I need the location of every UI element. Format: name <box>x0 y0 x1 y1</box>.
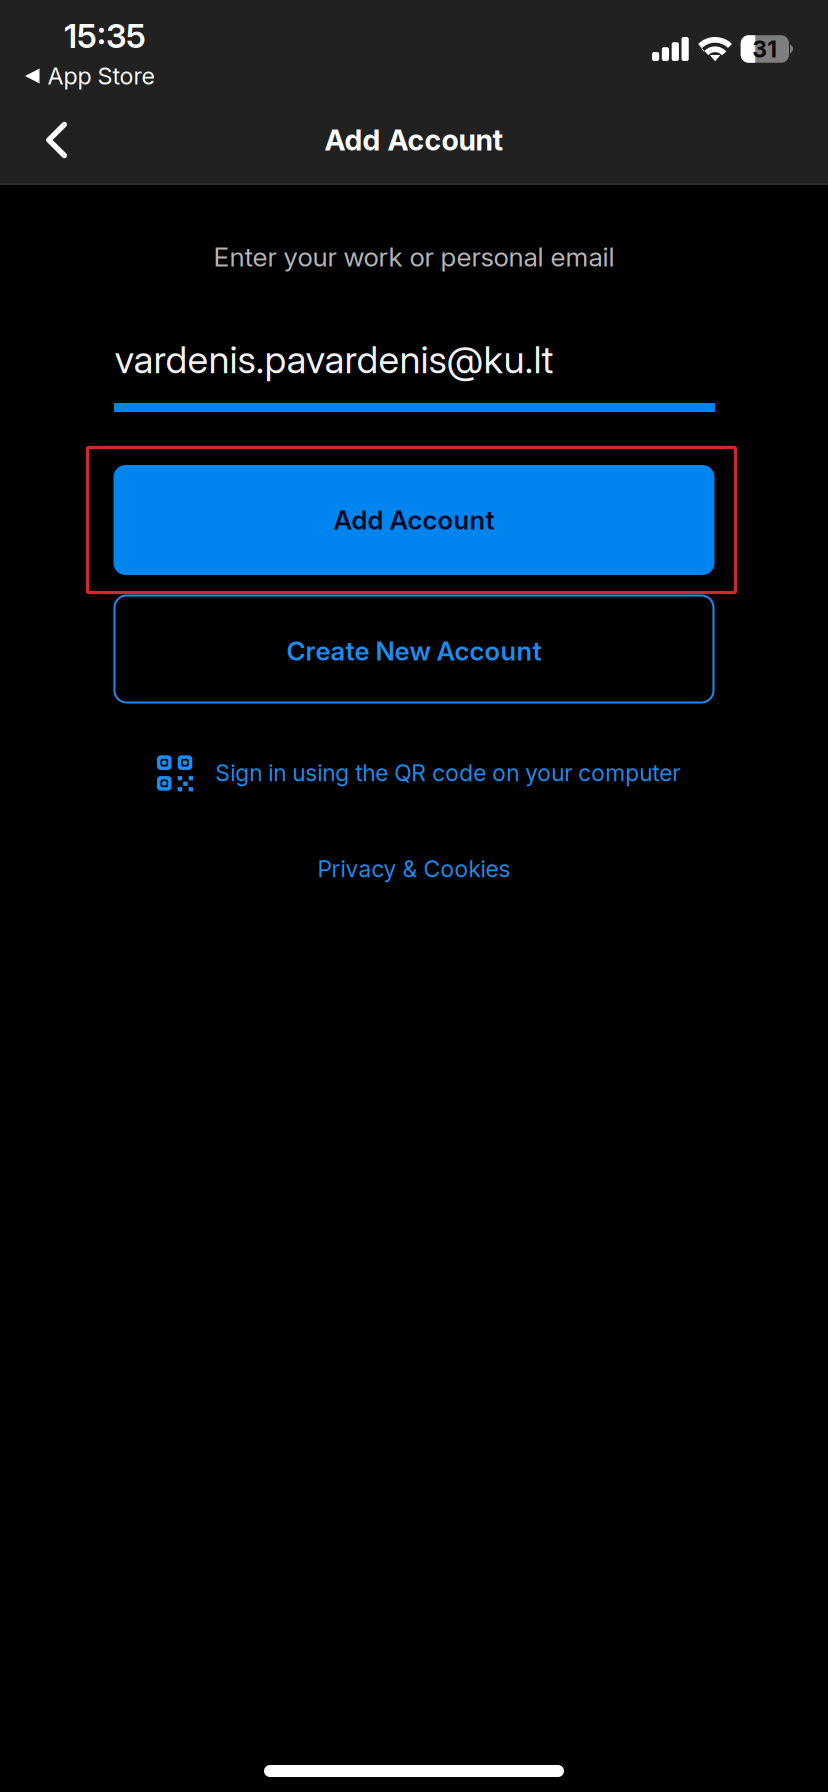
staticText: App Store <box>47 62 154 90</box>
staticText: vardenis.pavardenis@ku.lt <box>114 337 553 382</box>
button[interactable]: Add Account <box>113 465 714 575</box>
staticText: 31 <box>752 35 777 63</box>
staticText: 15:35 <box>64 16 146 56</box>
staticText: Add Account <box>333 504 494 536</box>
staticText: Enter your work or personal email <box>213 241 614 273</box>
button[interactable]: Privacy & Cookies <box>284 847 544 891</box>
staticText: Create New Account <box>286 635 541 667</box>
button[interactable]: Create New Account <box>114 595 713 702</box>
staticText: Add Account <box>324 123 503 157</box>
staticText: Sign in using the QR code on your comput… <box>215 759 680 787</box>
button[interactable]: Back <box>0 99 92 181</box>
staticText: Privacy & Cookies <box>317 855 510 883</box>
button[interactable]: Sign in using the QR code on your comput… <box>157 745 682 801</box>
